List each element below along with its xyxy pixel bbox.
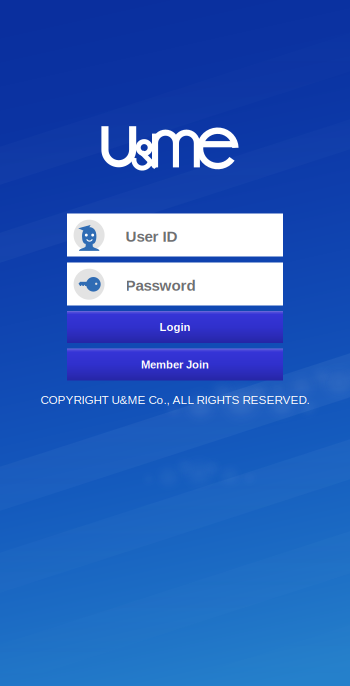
button[interactable]: Login — [67, 311, 283, 343]
button[interactable]: Member Join — [67, 348, 283, 380]
button[interactable]: Password — [67, 262, 283, 305]
staticText: User ID — [126, 228, 178, 245]
staticText: Password — [126, 277, 196, 294]
staticText: COPYRIGHT U&ME Co., ALL RIGHTS RESERVED. — [40, 393, 309, 407]
staticText: Login — [159, 321, 190, 333]
staticText: Member Join — [141, 358, 209, 371]
button[interactable]: User ID — [67, 213, 283, 256]
